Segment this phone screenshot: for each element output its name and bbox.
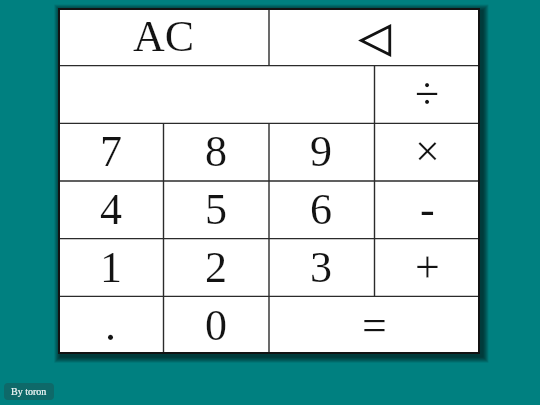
button[interactable]: 2 xyxy=(163,238,268,296)
button[interactable]: 7 xyxy=(58,122,163,180)
button[interactable]: 3 xyxy=(268,238,374,296)
staticText: 0 xyxy=(205,301,227,350)
staticText: = xyxy=(362,301,387,350)
button[interactable]: 9 xyxy=(268,122,374,180)
button[interactable]: AC xyxy=(58,8,269,65)
staticText: 5 xyxy=(205,185,227,234)
staticText: 2 xyxy=(205,243,227,292)
staticText: 9 xyxy=(310,127,332,176)
staticText: By toron xyxy=(11,386,47,397)
staticText: 4 xyxy=(100,185,122,234)
staticText: + xyxy=(415,243,440,292)
button[interactable]: 6 xyxy=(268,180,374,238)
button[interactable]: 5 xyxy=(163,180,268,238)
button[interactable] xyxy=(269,8,480,65)
button[interactable]: 8 xyxy=(163,122,268,180)
button[interactable]: 1 xyxy=(58,238,163,296)
staticText: . xyxy=(105,301,116,350)
staticText: - xyxy=(420,185,435,234)
staticText: × xyxy=(415,127,440,176)
staticText: 8 xyxy=(205,127,227,176)
staticText: 7 xyxy=(100,127,122,176)
staticText: 1 xyxy=(100,243,122,292)
button[interactable]: + xyxy=(374,238,480,296)
button[interactable]: = xyxy=(269,296,480,354)
button[interactable]: . xyxy=(58,296,163,354)
staticText: ÷ xyxy=(415,69,440,118)
button[interactable]: By toron xyxy=(4,383,54,400)
staticText: 6 xyxy=(310,185,332,234)
button[interactable]: 0 xyxy=(163,296,269,354)
staticText: 3 xyxy=(310,243,332,292)
button[interactable]: 4 xyxy=(58,180,163,238)
button[interactable]: × xyxy=(374,122,480,180)
button[interactable]: ÷ xyxy=(374,65,480,122)
button[interactable]: - xyxy=(374,180,480,238)
staticText: AC xyxy=(133,12,195,61)
